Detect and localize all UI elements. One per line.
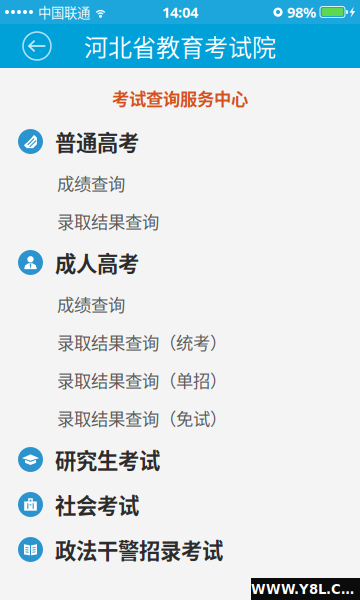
button[interactable]: 成绩查询 — [0, 164, 360, 202]
button[interactable]: 录取结果查询（统考） — [0, 323, 360, 361]
button[interactable]: 录取结果查询（单招） — [0, 361, 360, 399]
button[interactable]: 录取结果查询（免试） — [0, 399, 360, 437]
staticText: 中国联通 — [38, 2, 90, 22]
staticText: 研究生考试 — [55, 444, 160, 475]
staticText: 政法干警招录考试 — [55, 534, 223, 565]
staticText: 成人高考 — [55, 247, 139, 278]
button[interactable]: 研究生考试 — [0, 437, 360, 482]
button[interactable]: 成绩查询 — [0, 285, 360, 323]
button[interactable]: 成人高考 — [0, 240, 360, 285]
button[interactable]: 政法干警招录考试 — [0, 527, 360, 572]
staticText: 录取结果查询 — [57, 208, 159, 234]
staticText: 普通高考 — [55, 126, 139, 157]
staticText: 录取结果查询（统考） — [57, 329, 227, 355]
button[interactable]: 社会考试 — [0, 482, 360, 527]
staticText: 98% — [287, 2, 316, 22]
staticText: 考试查询服务中心 — [112, 85, 248, 111]
staticText: 录取结果查询（单招） — [57, 367, 227, 393]
staticText: 14:04 — [162, 2, 198, 22]
staticText: WWW.Y8L.COM — [251, 580, 360, 598]
button[interactable]: 录取结果查询 — [0, 202, 360, 240]
button[interactable]: Back — [17, 26, 57, 66]
staticText: 成绩查询 — [57, 170, 125, 196]
staticText: 成绩查询 — [57, 291, 125, 317]
staticText: 录取结果查询（免试） — [57, 405, 227, 431]
button[interactable]: 普通高考 — [0, 119, 360, 164]
staticText: 河北省教育考试院 — [84, 29, 276, 63]
staticText: 社会考试 — [55, 489, 139, 520]
